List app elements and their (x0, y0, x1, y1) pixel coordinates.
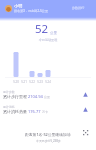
button[interactable]: Profile avatar (5, 5, 12, 12)
staticText: 5.24 (42, 80, 54, 84)
staticText: 2104.94 (28, 94, 43, 99)
staticText: 5.23 (34, 80, 46, 84)
staticText: 公里 (50, 31, 57, 35)
staticText: 步数排行 (72, 6, 85, 10)
staticText: 5.21 (18, 80, 30, 84)
staticText: 52 (35, 21, 49, 37)
staticText: 5.20 (10, 80, 22, 84)
button[interactable]: Share (83, 130, 89, 136)
button[interactable]: 累计步数 (0, 90, 96, 99)
staticText: 5.22 (26, 80, 38, 84)
staticText: 小明 (14, 3, 23, 8)
button[interactable]: 步数排行 (71, 5, 86, 11)
staticText: 今日运动里程 (0, 38, 96, 42)
button[interactable]: 累计消耗 (0, 105, 96, 114)
button[interactable]: Details (83, 92, 88, 97)
staticText: 累计消耗 (3, 105, 15, 109)
staticText: 万卡 (42, 110, 48, 114)
staticText: 累计消耗热量 (3, 109, 27, 114)
staticText: 176.77 (28, 109, 41, 114)
button[interactable]: Details (83, 107, 88, 112)
staticText: 公里 (44, 95, 50, 99)
staticText: 排名第3，已走路2.5公里 (14, 9, 48, 13)
staticText: 累计步行里程 (3, 94, 27, 99)
staticText: 距离第1名·52公里继续加油 (25, 132, 71, 137)
staticText: 累计步数 (3, 90, 15, 94)
staticText: 今天已步行5,238步 (36, 139, 61, 143)
